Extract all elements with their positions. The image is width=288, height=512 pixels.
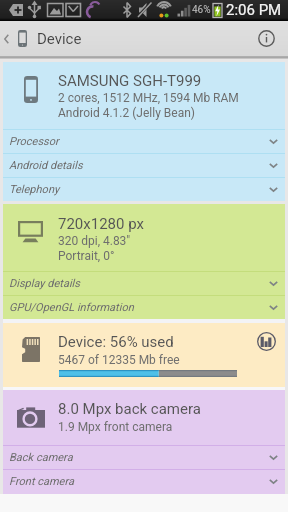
button[interactable]: Telephony [3,178,285,201]
button[interactable]: Statistics [246,324,286,364]
staticText: 2 cores, 1512 MHz, 1594 Mb RAM [58,91,239,105]
staticText: Android 4.1.2 (Jelly Bean) [58,106,195,120]
staticText: GPU/OpenGL information [9,301,134,314]
staticText: Device: 56% used [58,333,174,351]
staticText: Telephony [9,183,60,196]
button[interactable]: Processor [3,130,285,153]
staticText: Front camera [9,475,74,488]
button[interactable]: About / Info [248,21,285,56]
staticText: Back camera [9,451,73,464]
button[interactable]: Back camera [3,446,285,469]
staticText: Device [37,30,82,48]
staticText: Processor [9,135,59,148]
staticText: 8.0 Mpx back camera [58,400,201,418]
button[interactable]: Display details [3,272,285,295]
staticText: 320 dpi, 4.83" [58,234,131,248]
button[interactable]: Navigate up: Device [0,21,150,56]
button[interactable]: Android details [3,154,285,177]
button[interactable]: Front camera [3,470,285,493]
staticText: SAMSUNG SGH-T999 [58,72,202,90]
button[interactable]: GPU/OpenGL information [3,296,285,319]
staticText: 1.9 Mpx front camera [58,420,173,434]
staticText: Display details [9,277,80,290]
staticText: Android details [9,159,83,172]
staticText: 46% [192,4,211,16]
staticText: 720x1280 px [58,215,144,233]
staticText: Portrait, 0° [58,249,115,263]
staticText: 2:06 PM [226,1,282,19]
staticText: 5467 of 12335 Mb free [58,353,180,367]
